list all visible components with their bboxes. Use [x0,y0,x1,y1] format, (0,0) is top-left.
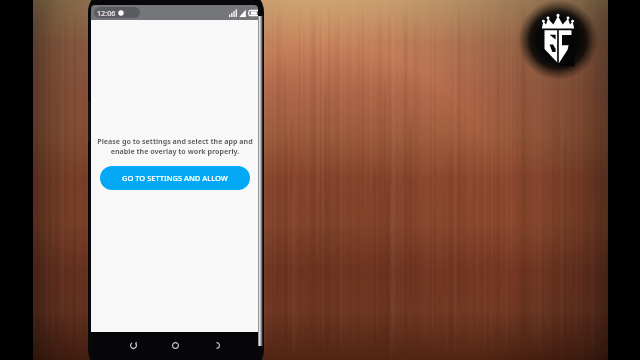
button[interactable]: BC logo [518,0,598,80]
button[interactable]: GO TO SETTINGS AND ALLOW [100,166,250,190]
staticText: GO TO SETTINGS AND ALLOW [122,173,228,183]
staticText: Please go to settings and select the app… [97,136,253,156]
button[interactable]: Recent apps [124,336,142,354]
button[interactable]: Home [166,336,184,354]
staticText: 12:06 [97,8,116,18]
button[interactable]: Back [207,336,225,354]
